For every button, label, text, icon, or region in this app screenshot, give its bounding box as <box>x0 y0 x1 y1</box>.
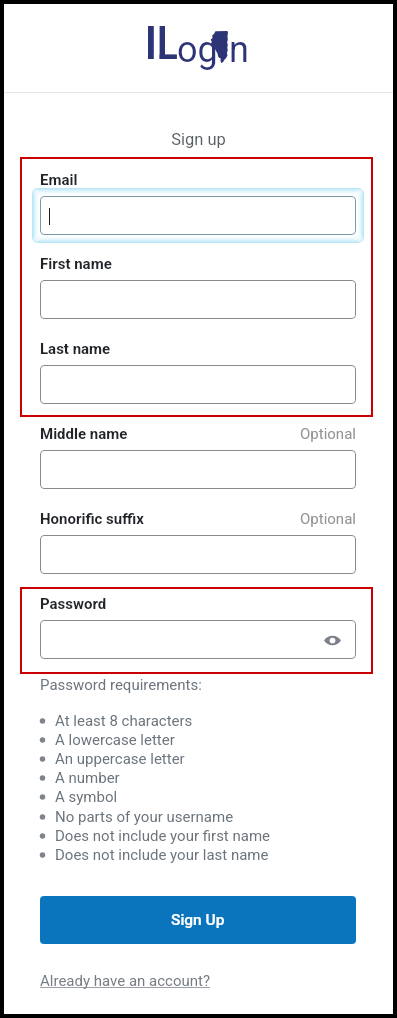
button[interactable]: Show password <box>40 620 356 659</box>
staticText: Email <box>40 171 78 189</box>
button[interactable]: Show password <box>321 629 343 651</box>
staticText: A number <box>55 769 120 787</box>
staticText: An uppercase letter <box>55 750 185 768</box>
staticText: A lowercase letter <box>55 731 175 749</box>
staticText: No parts of your username <box>55 808 234 826</box>
staticText: A symbol <box>55 788 118 806</box>
staticText: Sign Up <box>171 911 225 929</box>
staticText: Honorific suffix <box>40 510 144 528</box>
button[interactable] <box>40 365 356 404</box>
staticText: og <box>177 29 218 71</box>
staticText: Already have an account? <box>40 972 211 990</box>
staticText: First name <box>40 255 112 273</box>
staticText: Password <box>40 595 107 613</box>
button[interactable]: Already have an account? <box>40 972 211 990</box>
button[interactable]: Sign Up <box>40 896 356 944</box>
button[interactable] <box>40 196 356 235</box>
button[interactable] <box>40 450 356 489</box>
staticText: At least 8 characters <box>55 712 193 730</box>
staticText: Does not include your last name <box>55 846 269 864</box>
staticText: Middle name <box>40 425 128 443</box>
button[interactable] <box>40 280 356 319</box>
staticText: n <box>229 29 249 71</box>
staticText: Optional <box>300 510 356 528</box>
staticText: Password requirements: <box>40 676 202 694</box>
button[interactable] <box>40 535 356 574</box>
staticText: Last name <box>40 340 111 358</box>
staticText: Sign up <box>171 130 226 149</box>
staticText: Optional <box>300 425 356 443</box>
staticText: Does not include your first name <box>55 827 271 845</box>
